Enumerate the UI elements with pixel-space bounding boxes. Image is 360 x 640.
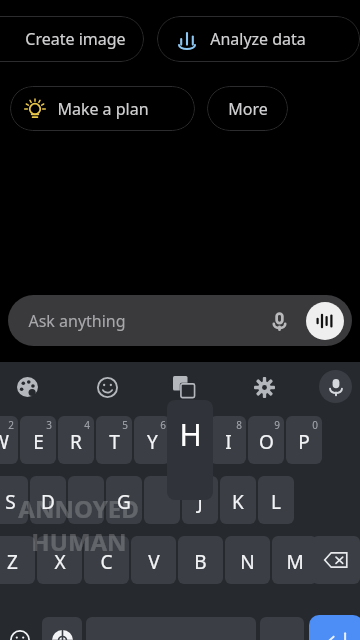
staticText: More [228,98,268,120]
staticText: 5 [122,418,128,432]
button[interactable]: V [131,536,176,584]
staticText: E [33,429,44,455]
staticText: 9 [274,418,280,432]
button[interactable]: K [220,476,256,524]
staticText: Make a plan [57,98,149,120]
button[interactable]: L [258,476,294,524]
button[interactable]: W [0,416,18,464]
staticText: HUMAN [31,525,127,558]
button[interactable]: Voice input [262,304,296,338]
staticText: N [240,549,255,575]
button[interactable]: Analyze data [157,16,360,62]
staticText: M [286,549,304,575]
staticText: 8 [236,418,242,432]
button[interactable]: Themes [15,375,39,399]
staticText: V [148,549,160,575]
staticText: ANNOYED [18,492,139,525]
button[interactable]: R [58,416,94,464]
button[interactable] [144,476,180,524]
button[interactable]: I [210,416,246,464]
staticText: Y [147,429,158,455]
staticText: T [109,429,120,455]
staticText: U [183,429,197,455]
button[interactable]: G [106,476,142,524]
button[interactable]: N [225,536,270,584]
staticText: 6 [160,418,166,432]
button[interactable]: B [178,536,223,584]
staticText: G [117,489,131,515]
button[interactable]: Emoji [95,375,119,399]
button[interactable]: M [272,536,317,584]
staticText: Ask anything [28,310,126,332]
button[interactable]: T [96,416,132,464]
button[interactable]: Translate [172,375,196,399]
button[interactable]: Voice mode [306,302,344,340]
staticText: P [298,429,310,455]
staticText: H [179,414,202,455]
staticText: R [70,429,82,455]
button[interactable]: C [84,536,129,584]
staticText: Create image [25,28,126,50]
staticText: O [259,429,274,455]
button[interactable]: E [20,416,56,464]
button[interactable]: O [248,416,284,464]
button[interactable]: P [286,416,322,464]
button[interactable]: Change language [42,617,82,640]
button[interactable] [68,476,104,524]
staticText: Z [7,549,18,575]
button[interactable]: Y [134,416,170,464]
staticText: B [194,549,207,575]
button[interactable]: Create image [0,16,144,62]
button[interactable]: U [172,416,208,464]
staticText: S [5,489,16,515]
staticText: 7 [198,418,204,432]
staticText: D [41,489,55,515]
button[interactable]: Z [0,536,35,584]
button[interactable]: Voice typing [319,370,352,403]
staticText: X [54,549,66,575]
staticText: I [225,429,232,455]
button[interactable]: Make a plan [10,86,195,131]
button[interactable]: D [30,476,66,524]
staticText: 4 [84,418,90,432]
button[interactable]: Ask anything [8,295,352,346]
button[interactable]: Emoji keyboard [0,617,36,640]
button[interactable]: Backspace [312,536,360,584]
button[interactable]: J [182,476,218,524]
staticText: J [197,489,203,515]
staticText: 2 [8,418,14,432]
button[interactable]: Settings [252,375,276,399]
staticText: 3 [46,418,52,432]
staticText: L [271,489,281,515]
button[interactable]: X [37,536,82,584]
button[interactable]: More [207,86,288,131]
staticText: 0 [312,418,318,432]
staticText: K [232,489,244,515]
staticText: Analyze data [210,28,306,50]
staticText: W [0,429,9,455]
staticText: C [100,549,113,575]
button[interactable]: S [0,476,28,524]
button[interactable]: Enter [309,615,360,640]
